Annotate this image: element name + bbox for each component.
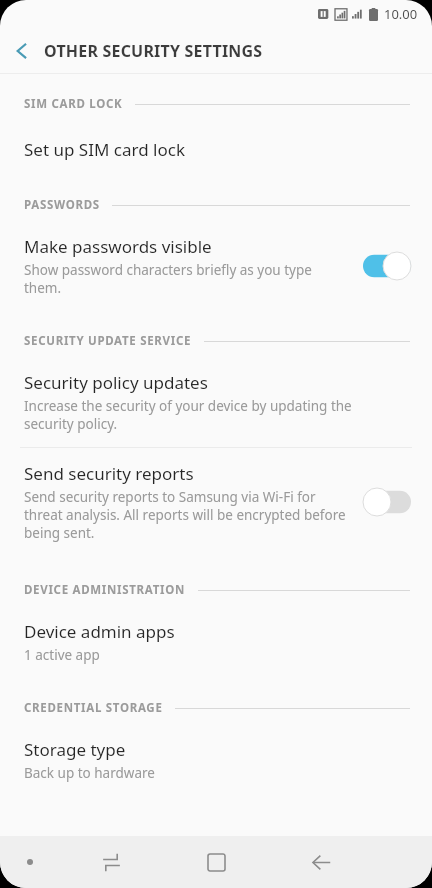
button[interactable]: Recents bbox=[59, 853, 164, 872]
staticText: SIM CARD LOCK bbox=[24, 96, 123, 112]
button[interactable]: Set up SIM card lock bbox=[0, 120, 432, 179]
button[interactable]: Send security reports bbox=[0, 448, 432, 556]
staticText: DEVICE ADMINISTRATION bbox=[24, 582, 186, 598]
staticText: Make passwords visible bbox=[24, 235, 212, 258]
staticText: Security policy updates bbox=[24, 371, 208, 394]
staticText: 10.00 bbox=[384, 5, 418, 23]
staticText: OTHER SECURITY SETTINGS bbox=[44, 40, 263, 62]
staticText: SECURITY UPDATE SERVICE bbox=[24, 333, 192, 349]
staticText: Device admin apps bbox=[24, 620, 175, 643]
button[interactable]: Security policy updates bbox=[0, 357, 432, 447]
button[interactable]: Off bbox=[362, 487, 412, 517]
staticText: Storage type bbox=[24, 738, 126, 761]
staticText: PASSWORDS bbox=[24, 197, 100, 213]
staticText: Back up to hardware bbox=[24, 764, 155, 782]
staticText: CREDENTIAL STORAGE bbox=[24, 700, 163, 716]
button[interactable]: Back bbox=[269, 853, 374, 872]
staticText: 1 active app bbox=[24, 646, 100, 664]
button[interactable]: Device admin apps bbox=[0, 606, 432, 678]
staticText: Increase the security of your device by … bbox=[24, 397, 402, 433]
button[interactable]: Back bbox=[0, 29, 44, 73]
button[interactable]: Storage type bbox=[0, 724, 432, 796]
staticText: Send security reports to Samsung via Wi-… bbox=[24, 488, 348, 542]
button[interactable]: Make passwords visible bbox=[0, 221, 432, 311]
staticText: Set up SIM card lock bbox=[24, 138, 185, 161]
button[interactable]: Home bbox=[164, 854, 269, 871]
staticText: Send security reports bbox=[24, 462, 194, 485]
button[interactable]: On bbox=[362, 251, 412, 281]
staticText: Show password characters briefly as you … bbox=[24, 261, 348, 297]
